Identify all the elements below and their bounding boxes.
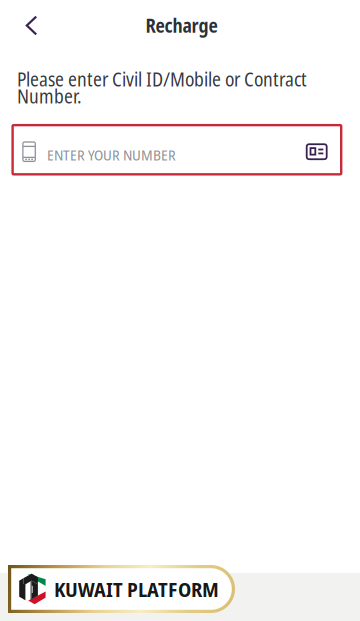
button[interactable]: Scan Civil ID: [306, 143, 328, 160]
staticText: KUWAIT PLATFORM: [54, 575, 219, 603]
staticText: Please enter Civil ID/Mobile or Contract…: [17, 66, 307, 109]
button[interactable]: Back: [0, 3, 53, 47]
button[interactable]: KUWAIT PLATFORM: [8, 565, 235, 613]
staticText: Recharge: [145, 13, 217, 38]
staticText: ENTER YOUR NUMBER: [47, 144, 176, 165]
